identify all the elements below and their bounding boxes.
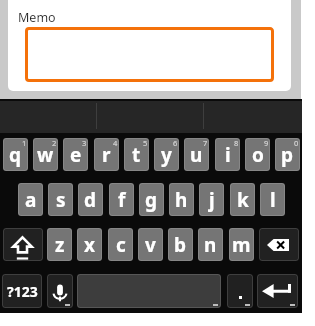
staticText: 0	[294, 138, 299, 148]
button[interactable]: Shift	[3, 228, 43, 261]
staticText: g	[145, 187, 158, 213]
button[interactable]: z	[47, 228, 72, 261]
staticText: u	[190, 142, 203, 168]
staticText: p	[281, 142, 294, 168]
staticText: 2	[52, 138, 57, 148]
staticText: y	[161, 142, 172, 168]
button[interactable]: w	[33, 138, 58, 171]
button[interactable]: r	[94, 138, 119, 171]
staticText: 1	[22, 138, 27, 148]
staticText: z	[55, 232, 65, 258]
staticText: l	[270, 187, 276, 213]
staticText: n	[204, 232, 217, 258]
button[interactable]: a	[18, 183, 43, 216]
staticText: 5	[143, 138, 148, 148]
staticText: w	[37, 142, 54, 168]
button[interactable]: l	[260, 183, 285, 216]
button[interactable]: n	[198, 228, 223, 261]
staticText: 3	[82, 138, 87, 148]
button[interactable]: Backspace	[259, 228, 299, 261]
button[interactable]	[25, 27, 274, 82]
staticText: b	[174, 232, 187, 258]
button[interactable]: y	[154, 138, 179, 171]
staticText: x	[84, 232, 95, 258]
staticText: 8	[234, 138, 239, 148]
button[interactable]: c	[108, 228, 133, 261]
button[interactable]: g	[139, 183, 164, 216]
button[interactable]: o	[245, 138, 270, 171]
button[interactable]: p	[275, 138, 300, 171]
button[interactable]: m	[229, 228, 254, 261]
button[interactable]: x	[77, 228, 102, 261]
staticText: s	[56, 187, 66, 213]
staticText: 6	[173, 138, 178, 148]
button[interactable]: t	[124, 138, 149, 171]
staticText: t	[132, 142, 141, 168]
staticText: 9	[264, 138, 269, 148]
button[interactable]: Symbols	[2, 274, 42, 308]
button[interactable]: d	[78, 183, 103, 216]
button[interactable]: Space	[77, 274, 221, 308]
button[interactable]: k	[230, 183, 255, 216]
staticText: q	[9, 142, 22, 168]
button[interactable]: Period	[227, 274, 253, 308]
staticText: e	[70, 142, 82, 168]
staticText: c	[116, 232, 126, 258]
button[interactable]: h	[169, 183, 194, 216]
staticText: 7	[203, 138, 208, 148]
button[interactable]: Voice input	[47, 274, 73, 308]
staticText: r	[102, 142, 111, 168]
button[interactable]: Enter	[257, 274, 298, 308]
staticText: d	[84, 187, 97, 213]
staticText: v	[145, 232, 156, 258]
button[interactable]: q	[3, 138, 28, 171]
staticText: 4	[113, 138, 118, 148]
staticText: m	[232, 232, 251, 258]
button[interactable]: e	[63, 138, 88, 171]
button[interactable]: s	[48, 183, 73, 216]
staticText: h	[175, 187, 188, 213]
button[interactable]: u	[184, 138, 209, 171]
staticText: Memo	[18, 9, 56, 26]
button[interactable]: v	[138, 228, 163, 261]
staticText: f	[118, 187, 126, 213]
staticText: o	[252, 142, 264, 168]
staticText: ?123	[7, 282, 38, 301]
staticText: i	[225, 142, 231, 168]
button[interactable]: i	[215, 138, 240, 171]
button[interactable]: f	[109, 183, 134, 216]
staticText: a	[25, 187, 37, 213]
button[interactable]: b	[168, 228, 193, 261]
staticText: k	[237, 187, 249, 213]
button[interactable]: j	[199, 183, 224, 216]
staticText: j	[209, 187, 215, 213]
